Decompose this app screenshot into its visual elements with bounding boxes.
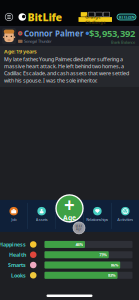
staticText: My late father, Young Palmer, died after… — [4, 56, 129, 84]
button[interactable]: Bitizenship — [112, 14, 139, 20]
button[interactable]: Age up — [56, 195, 83, 222]
staticText: Activities — [117, 217, 133, 222]
button[interactable]: Orange Challenge — [78, 12, 112, 22]
staticText: + — [64, 192, 75, 217]
staticText: Connor Palmer — [24, 28, 84, 39]
staticText: Looks — [11, 272, 26, 279]
staticText: Happiness — [0, 241, 26, 248]
button[interactable]: Relationships — [84, 200, 111, 232]
button[interactable]: Max age — [73, 222, 85, 234]
staticText: BitLife — [27, 10, 62, 24]
button[interactable]: Menu — [2, 10, 16, 24]
button[interactable]: Job — [0, 200, 27, 232]
staticText: MAX — [75, 225, 82, 228]
staticText: Orange Challenge — [85, 14, 105, 25]
staticText: Age: 19 years — [4, 48, 37, 55]
staticText: Age — [76, 227, 82, 231]
staticText: Health — [9, 251, 26, 258]
staticText: 86% — [111, 262, 119, 268]
staticText: 46% — [75, 242, 83, 247]
staticText: Smarts — [8, 261, 26, 269]
staticText: 83% — [108, 273, 116, 278]
button[interactable]: Assets — [28, 200, 55, 232]
button[interactable]: Activities — [112, 200, 139, 232]
staticText: Bank Balance — [111, 39, 135, 45]
staticText: 73% — [99, 252, 107, 257]
staticText: Assets — [36, 217, 48, 222]
staticText: Age — [63, 213, 76, 222]
staticText: Job — [11, 217, 16, 222]
staticText: $3,953,392 — [89, 27, 135, 39]
staticText: Relationships — [86, 217, 108, 222]
staticText: BITIZEN — [118, 14, 134, 20]
staticText: Senegal Thunder — [24, 39, 52, 44]
